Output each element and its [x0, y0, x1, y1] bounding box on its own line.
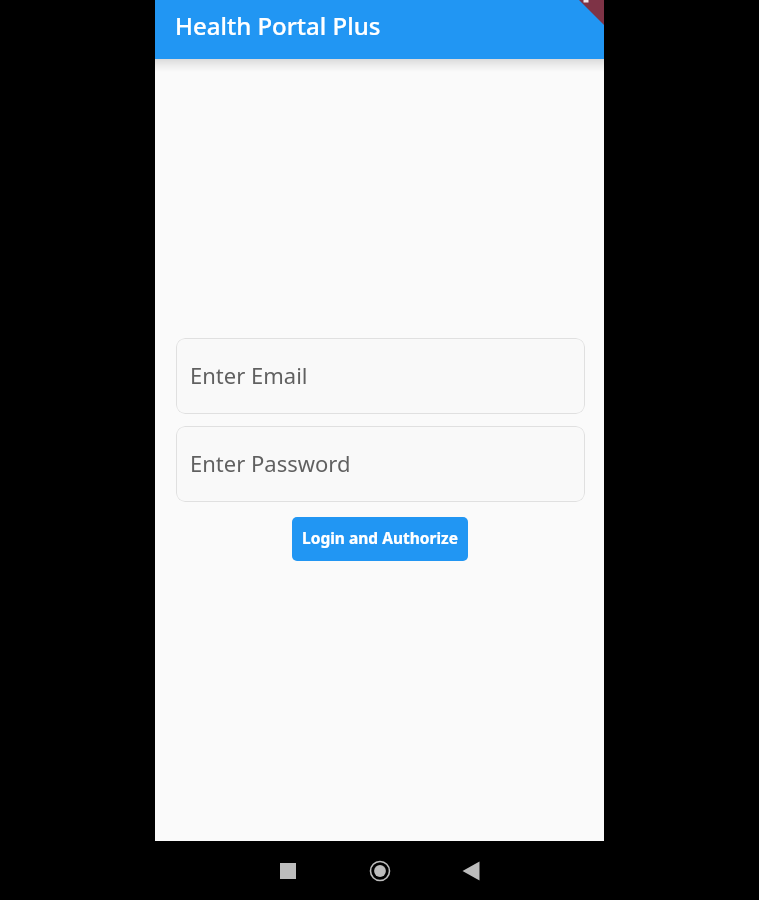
button[interactable]: Enter Email: [176, 338, 585, 414]
button[interactable]: Login and Authorize: [292, 517, 468, 561]
button[interactable]: Home: [360, 851, 400, 891]
button[interactable]: Back: [451, 851, 491, 891]
staticText: Enter Email: [190, 360, 308, 390]
staticText: Login and Authorize: [302, 527, 458, 548]
staticText: Enter Password: [190, 448, 351, 478]
button[interactable]: Enter Password: [176, 426, 585, 502]
button[interactable]: Recent apps: [268, 851, 308, 891]
staticText: Health Portal Plus: [175, 9, 381, 42]
